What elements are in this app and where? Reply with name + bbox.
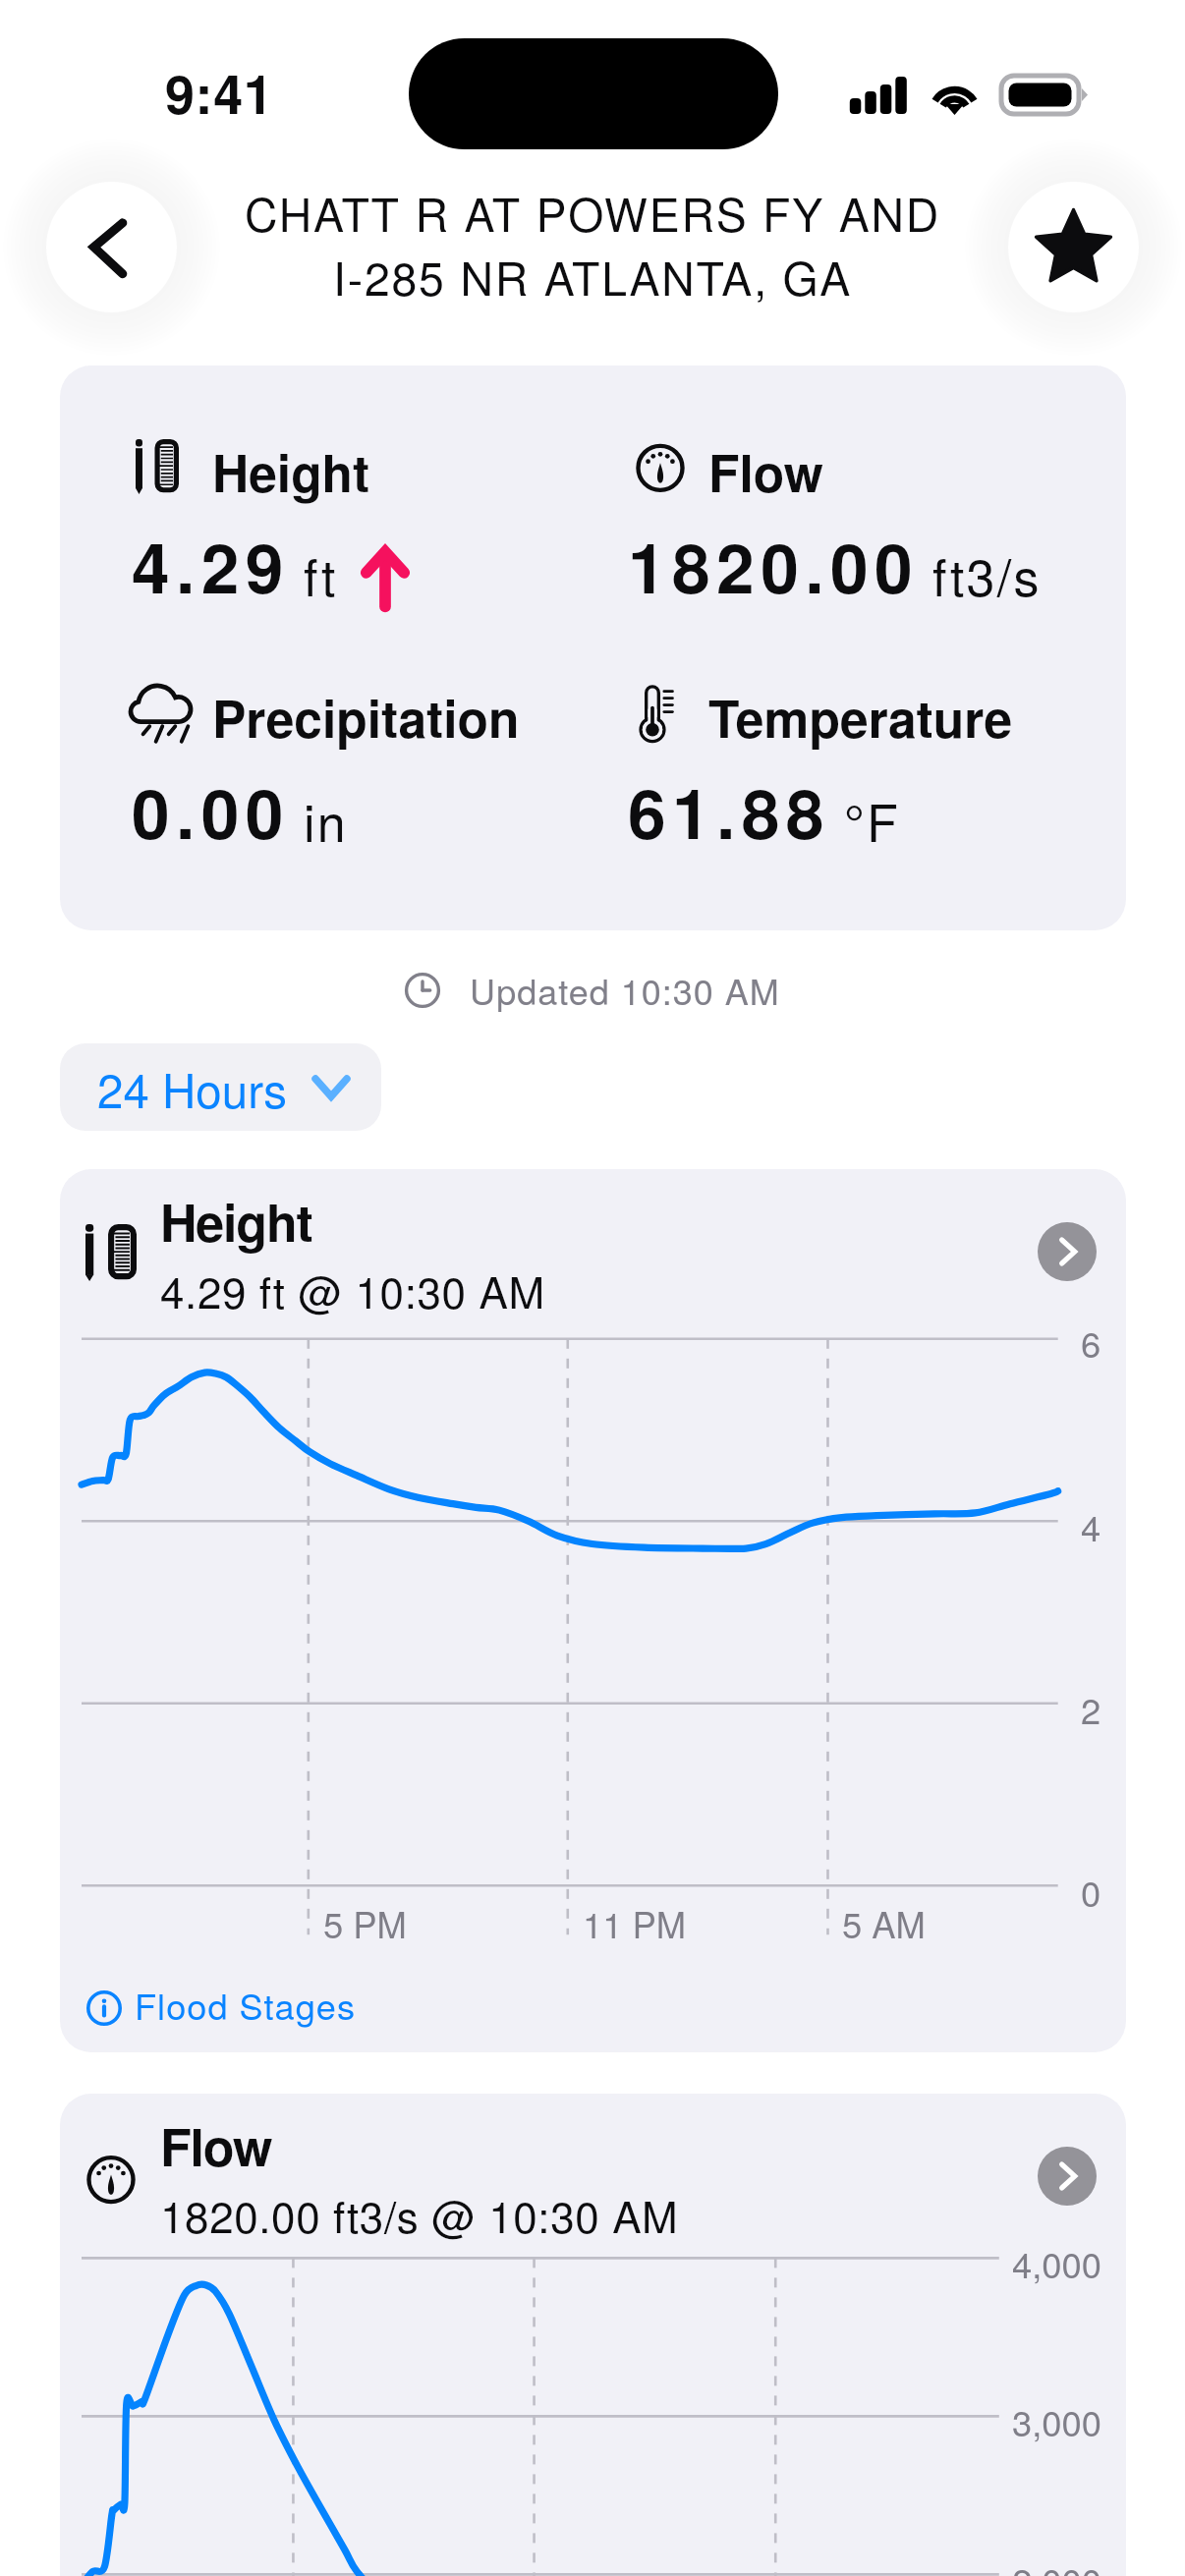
staticText: 4.29 <box>132 517 290 615</box>
staticText: Precipitation <box>212 681 520 754</box>
staticText: 5 AM <box>842 1897 926 1948</box>
staticText: 1820.00 <box>628 517 919 615</box>
staticText: 61.88 <box>628 762 830 861</box>
staticText: Flow <box>708 435 823 508</box>
staticText: Temperature <box>708 681 1013 754</box>
staticText: 2 <box>1081 1683 1101 1734</box>
staticText: 0.00 <box>132 762 290 861</box>
staticText: 5 PM <box>323 1897 407 1948</box>
button[interactable]: Favourite <box>1008 182 1139 312</box>
button[interactable]: Height <box>60 1169 1126 2052</box>
staticText: in <box>304 783 348 856</box>
button[interactable]: Open Height details <box>1038 1222 1097 1281</box>
staticText: Height <box>160 1184 312 1257</box>
staticText: 4.29 ft @ 10:30 AM <box>160 1259 545 1320</box>
button[interactable]: Back <box>46 182 177 312</box>
staticText: 24 Hours <box>97 1054 287 1121</box>
staticText: ft <box>304 537 338 610</box>
staticText: ft3/s <box>932 537 1042 610</box>
staticText: Height <box>212 435 370 508</box>
staticText: 1820.00 ft3/s @ 10:30 AM <box>160 2183 679 2245</box>
staticText: 3,000 <box>1012 2395 1102 2446</box>
staticText: 6 <box>1081 1316 1101 1368</box>
staticText: 4 <box>1081 1500 1101 1551</box>
button[interactable]: Open Flow details <box>1038 2147 1097 2206</box>
button[interactable]: 24 Hours <box>60 1043 381 1131</box>
button[interactable]: Flow <box>60 2094 1126 2576</box>
staticText: 0 <box>1081 1866 1101 1917</box>
staticText: Updated 10:30 AM <box>470 965 780 1016</box>
staticText: 4,000 <box>1012 2237 1102 2288</box>
staticText: 9:41 <box>165 54 274 130</box>
button[interactable]: Flood Stages <box>86 1990 357 2042</box>
staticText: Flow <box>160 2108 272 2181</box>
staticText: °F <box>844 783 900 856</box>
staticText: Flood Stages <box>135 1979 357 2030</box>
staticText: 11 PM <box>583 1897 687 1948</box>
staticText: CHATT R AT POWERS FY AND I-285 NR ATLANT… <box>177 180 1008 308</box>
staticText: 2,000 <box>1012 2553 1102 2576</box>
